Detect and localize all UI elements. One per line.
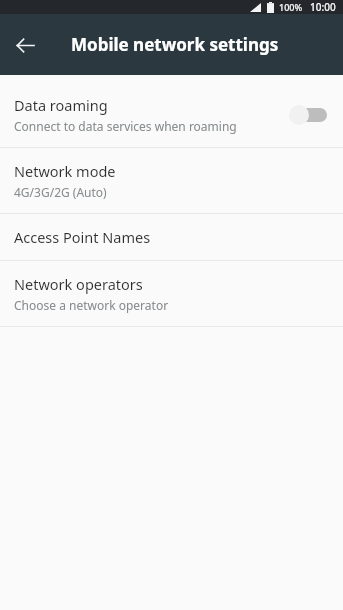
staticText: 100% bbox=[279, 1, 303, 13]
button[interactable]: Network mode bbox=[0, 148, 343, 213]
staticText: 4G/3G/2G (Auto) bbox=[14, 184, 107, 200]
staticText: Access Point Names bbox=[14, 227, 151, 247]
button[interactable]: Back bbox=[9, 29, 41, 61]
staticText: 10:00 bbox=[310, 0, 336, 14]
button[interactable]: Network operators bbox=[0, 261, 343, 326]
button[interactable]: Data roaming bbox=[0, 82, 343, 147]
staticText: Data roaming bbox=[14, 95, 108, 115]
staticText: Network mode bbox=[14, 161, 116, 181]
staticText: Connect to data services when roaming bbox=[14, 118, 237, 134]
staticText: Network operators bbox=[14, 274, 143, 294]
staticText: Mobile network settings bbox=[71, 33, 279, 56]
staticText: Choose a network operator bbox=[14, 297, 169, 313]
button[interactable]: Access Point Names bbox=[0, 214, 343, 260]
button[interactable]: Data roaming toggle bbox=[289, 103, 329, 127]
